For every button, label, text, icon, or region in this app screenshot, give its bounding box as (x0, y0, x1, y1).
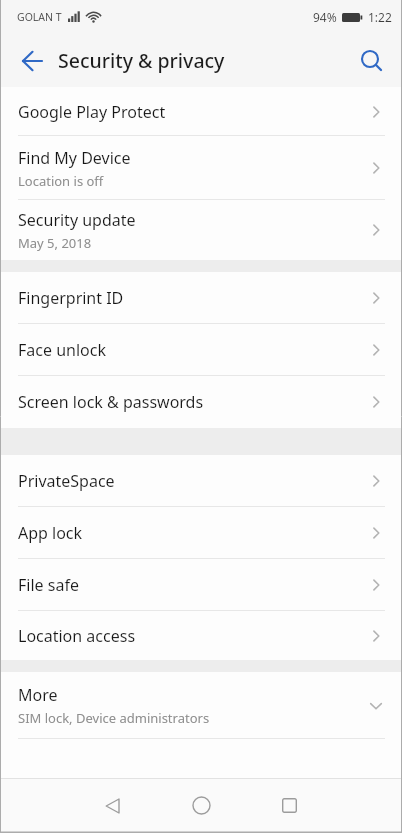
button[interactable]: Location access (0, 611, 402, 660)
staticText: Security update (18, 209, 136, 231)
staticText: App lock (18, 522, 83, 544)
staticText: Google Play Protect (18, 101, 166, 123)
button[interactable] (342, 34, 402, 87)
button[interactable]: Google Play Protect (0, 87, 402, 136)
staticText: 94% (313, 9, 337, 25)
staticText: Screen lock & passwords (18, 391, 204, 413)
button[interactable]: More (0, 672, 402, 739)
button[interactable]: App lock (0, 507, 402, 559)
staticText: 1:22 (368, 9, 392, 25)
staticText: Find My Device (18, 147, 131, 169)
button[interactable]: Find My Device (0, 136, 402, 200)
button[interactable]: PrivateSpace (0, 455, 402, 507)
staticText: SIM lock, Device administrators (18, 709, 210, 727)
staticText: May 5, 2018 (18, 234, 92, 252)
staticText: PrivateSpace (18, 470, 115, 492)
button[interactable]: File safe (0, 559, 402, 611)
button[interactable]: Fingerprint ID (0, 272, 402, 324)
button[interactable] (265, 778, 313, 833)
staticText: Location access (18, 625, 136, 647)
staticText: More (18, 684, 58, 706)
button[interactable]: Screen lock & passwords (0, 376, 402, 428)
staticText: GOLAN T (17, 10, 62, 24)
button[interactable] (177, 778, 225, 833)
staticText: File safe (18, 574, 79, 596)
staticText: Face unlock (18, 339, 106, 361)
button[interactable] (0, 34, 56, 87)
staticText: Fingerprint ID (18, 287, 124, 309)
button[interactable] (88, 778, 136, 833)
button[interactable]: Security update (0, 200, 402, 260)
button[interactable]: Face unlock (0, 324, 402, 376)
staticText: Security & privacy (58, 47, 225, 74)
staticText: Location is off (18, 172, 104, 190)
